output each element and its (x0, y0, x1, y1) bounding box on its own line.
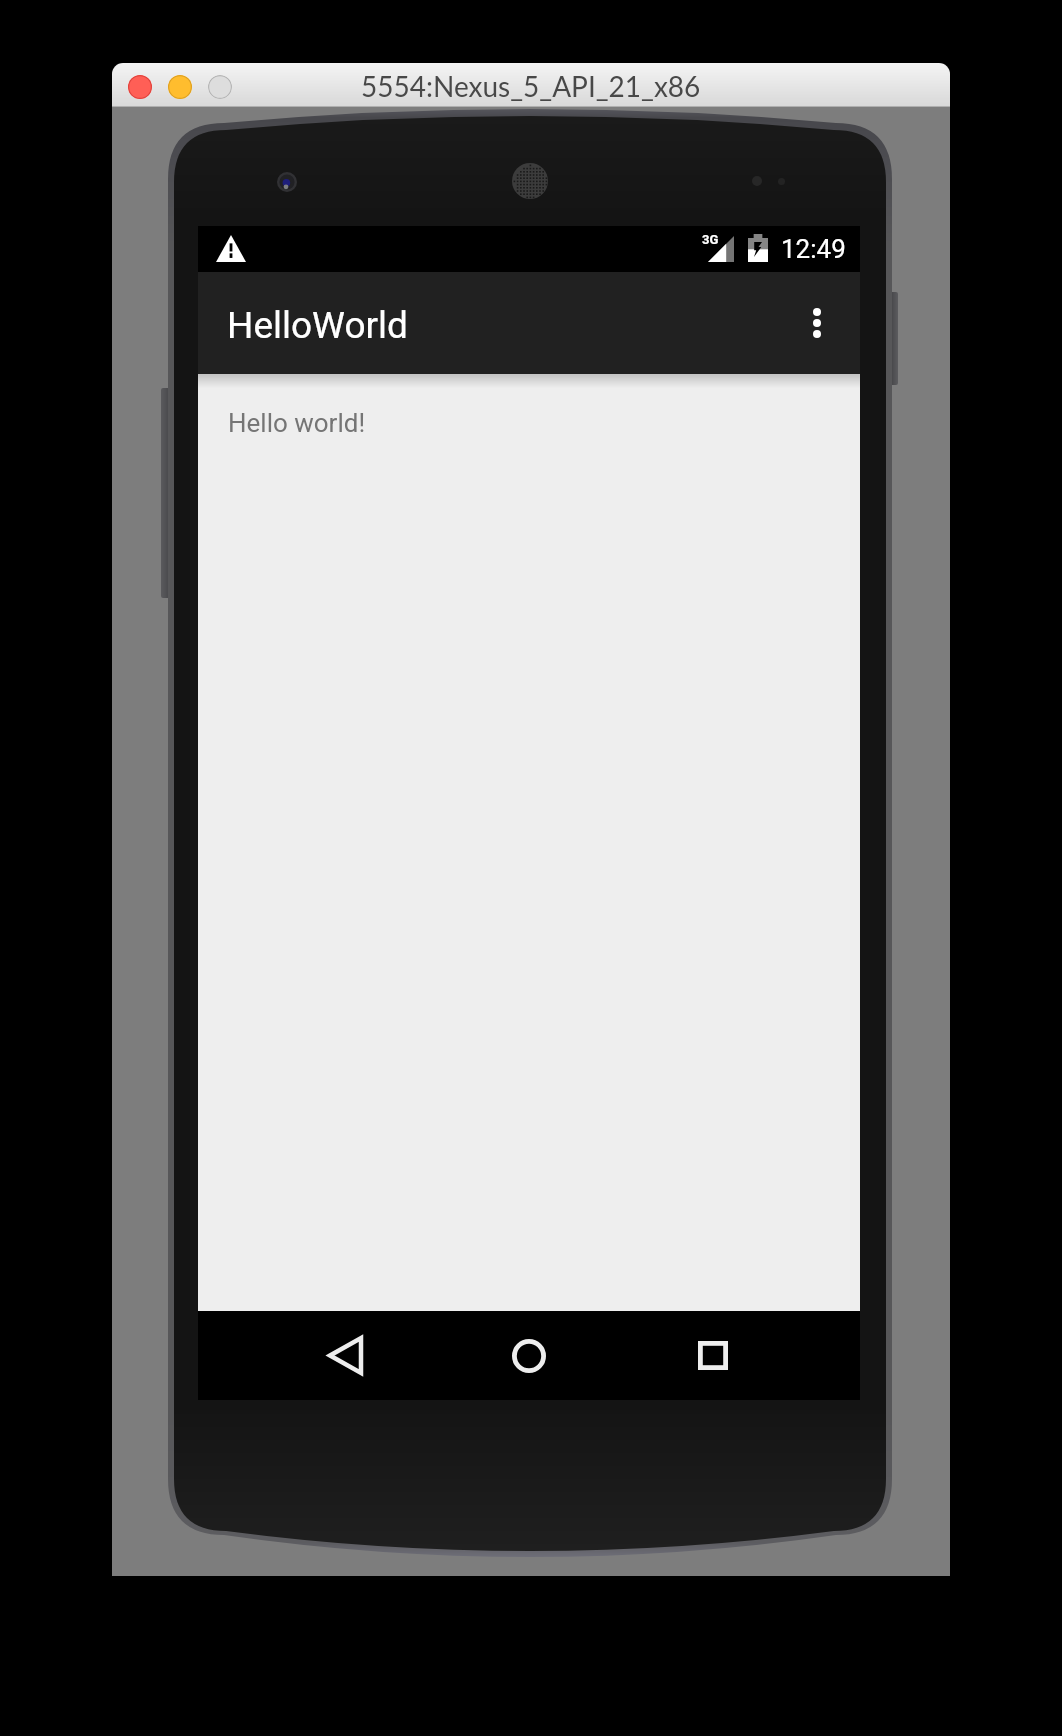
button[interactable]: Zoom window (208, 75, 232, 99)
staticText: 3G (702, 232, 719, 247)
staticText: HelloWorld (227, 304, 408, 347)
button[interactable]: More options (770, 272, 860, 374)
staticText: 5554:Nexus_5_API_21_x86 (361, 69, 701, 103)
staticText: 12:49 (781, 234, 846, 264)
button[interactable]: Recent apps (667, 1311, 759, 1400)
button[interactable]: Back (299, 1311, 391, 1400)
button[interactable]: Home (483, 1311, 575, 1400)
staticText: Hello world! (228, 408, 366, 438)
button[interactable]: Close window (128, 75, 152, 99)
button[interactable]: Minimize window (168, 75, 192, 99)
